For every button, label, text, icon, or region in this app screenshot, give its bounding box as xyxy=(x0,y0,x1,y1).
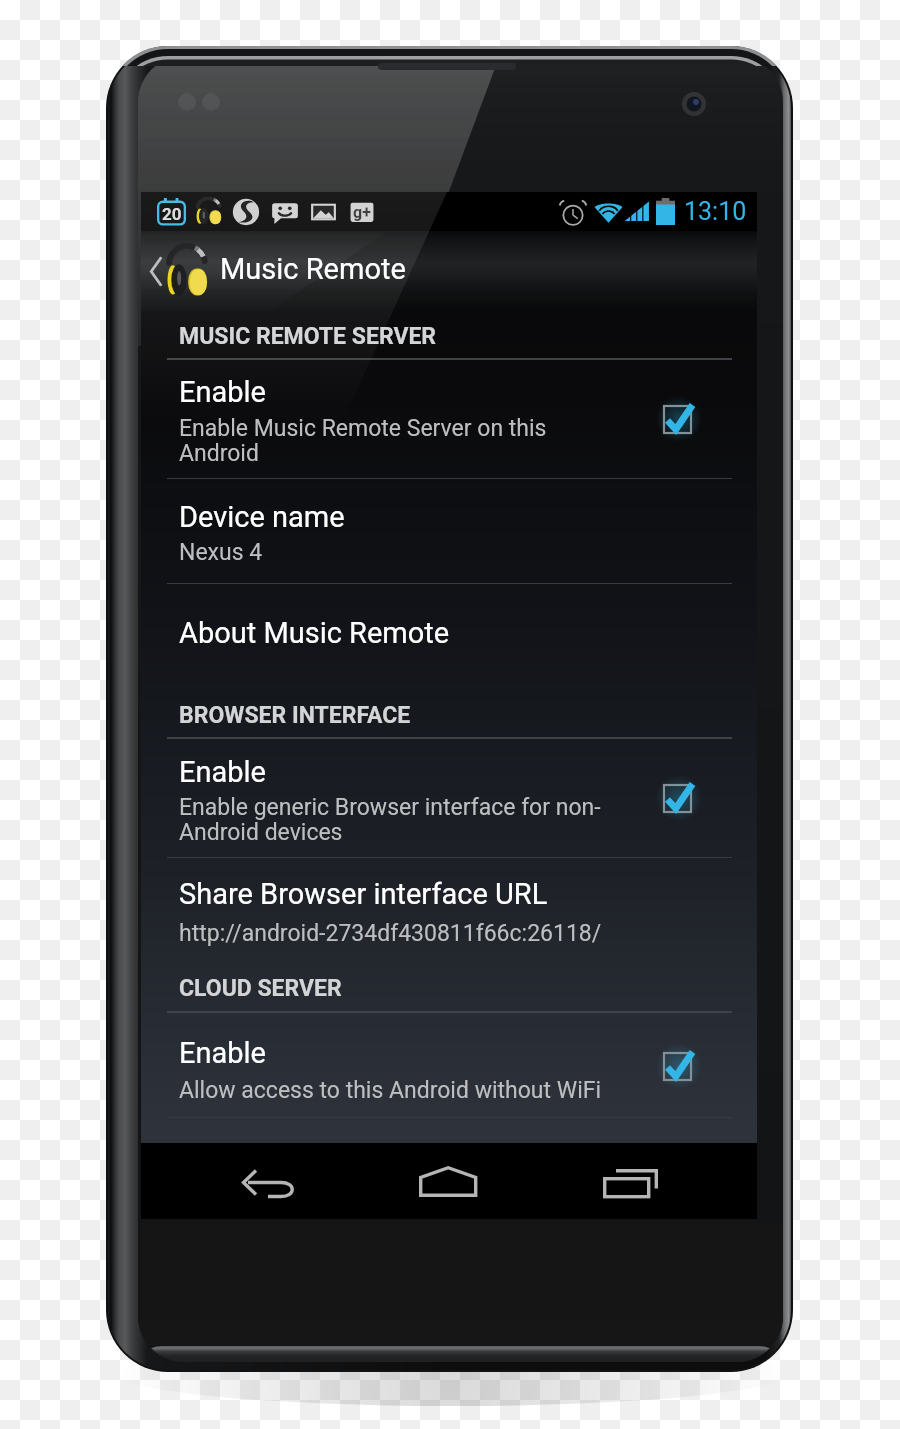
staticText: About Music Remote xyxy=(179,616,450,650)
staticText: Android devices xyxy=(179,819,343,846)
button[interactable] xyxy=(141,478,757,583)
button[interactable]: Enabled xyxy=(656,398,699,441)
staticText: BROWSER INTERFACE xyxy=(179,702,411,729)
button[interactable]: Back xyxy=(141,1143,347,1219)
button[interactable] xyxy=(141,358,757,478)
staticText: Allow access to this Android without WiF… xyxy=(179,1077,602,1104)
staticText: Enable xyxy=(179,1036,266,1070)
button[interactable] xyxy=(141,857,757,960)
staticText: 20 xyxy=(162,204,182,224)
staticText: MUSIC REMOTE SERVER xyxy=(179,323,437,350)
button[interactable]: Recent apps xyxy=(552,1143,757,1219)
staticText: CLOUD SERVER xyxy=(179,975,342,1002)
staticText: 13:10 xyxy=(684,197,747,226)
staticText: Share Browser interface URL xyxy=(179,877,548,911)
other: Navigate up xyxy=(149,256,163,287)
staticText: g+ xyxy=(353,203,371,222)
button[interactable] xyxy=(141,583,757,690)
staticText: http://android-2734df430811f66c:26118/ xyxy=(179,920,602,947)
button[interactable]: Enabled xyxy=(656,1045,699,1088)
staticText: Android xyxy=(179,440,259,467)
staticText: Nexus 4 xyxy=(179,539,263,566)
staticText: Enable Music Remote Server on this xyxy=(179,415,547,442)
button[interactable] xyxy=(141,1011,757,1117)
button[interactable] xyxy=(141,737,757,857)
staticText: Music Remote xyxy=(220,252,406,286)
button[interactable]: Enabled xyxy=(656,777,699,820)
staticText: Enable generic Browser interface for non… xyxy=(179,794,601,821)
staticText: Device name xyxy=(179,500,345,534)
button[interactable]: Home xyxy=(347,1143,552,1219)
staticText: Enable xyxy=(179,375,266,409)
staticText: Enable xyxy=(179,755,266,789)
button[interactable]: Navigate up xyxy=(141,231,757,311)
